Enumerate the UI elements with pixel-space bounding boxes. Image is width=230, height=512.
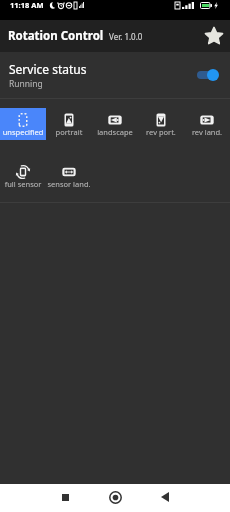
button[interactable]: Back <box>153 485 177 509</box>
button[interactable]: Service status <box>0 52 230 98</box>
button[interactable]: landscape <box>92 108 138 140</box>
staticText: 11:18 AM <box>10 0 44 10</box>
staticText: full sensor <box>0 179 46 189</box>
button[interactable]: unspecified <box>0 108 46 140</box>
staticText: rev port. <box>138 127 184 137</box>
staticText: rev land. <box>184 127 230 137</box>
staticText: Ver. 1.0.0 <box>109 31 143 42</box>
button[interactable]: rev port. <box>138 108 184 140</box>
button[interactable]: portrait <box>46 108 92 140</box>
staticText: Rotation Control <box>8 28 104 44</box>
button[interactable]: Favorite <box>201 23 227 49</box>
button[interactable]: Home <box>103 485 127 509</box>
staticText: Running <box>9 78 43 90</box>
staticText: sensor land. <box>46 179 92 189</box>
staticText: unspecified <box>0 127 46 137</box>
staticText: Service status <box>9 61 87 77</box>
button[interactable]: rev land. <box>184 108 230 140</box>
button[interactable]: Service toggle <box>193 68 219 82</box>
staticText: portrait <box>46 127 92 137</box>
button[interactable]: Recent apps <box>53 485 77 509</box>
button[interactable]: sensor land. <box>46 160 92 192</box>
button[interactable]: full sensor <box>0 160 46 192</box>
staticText: landscape <box>92 127 138 137</box>
